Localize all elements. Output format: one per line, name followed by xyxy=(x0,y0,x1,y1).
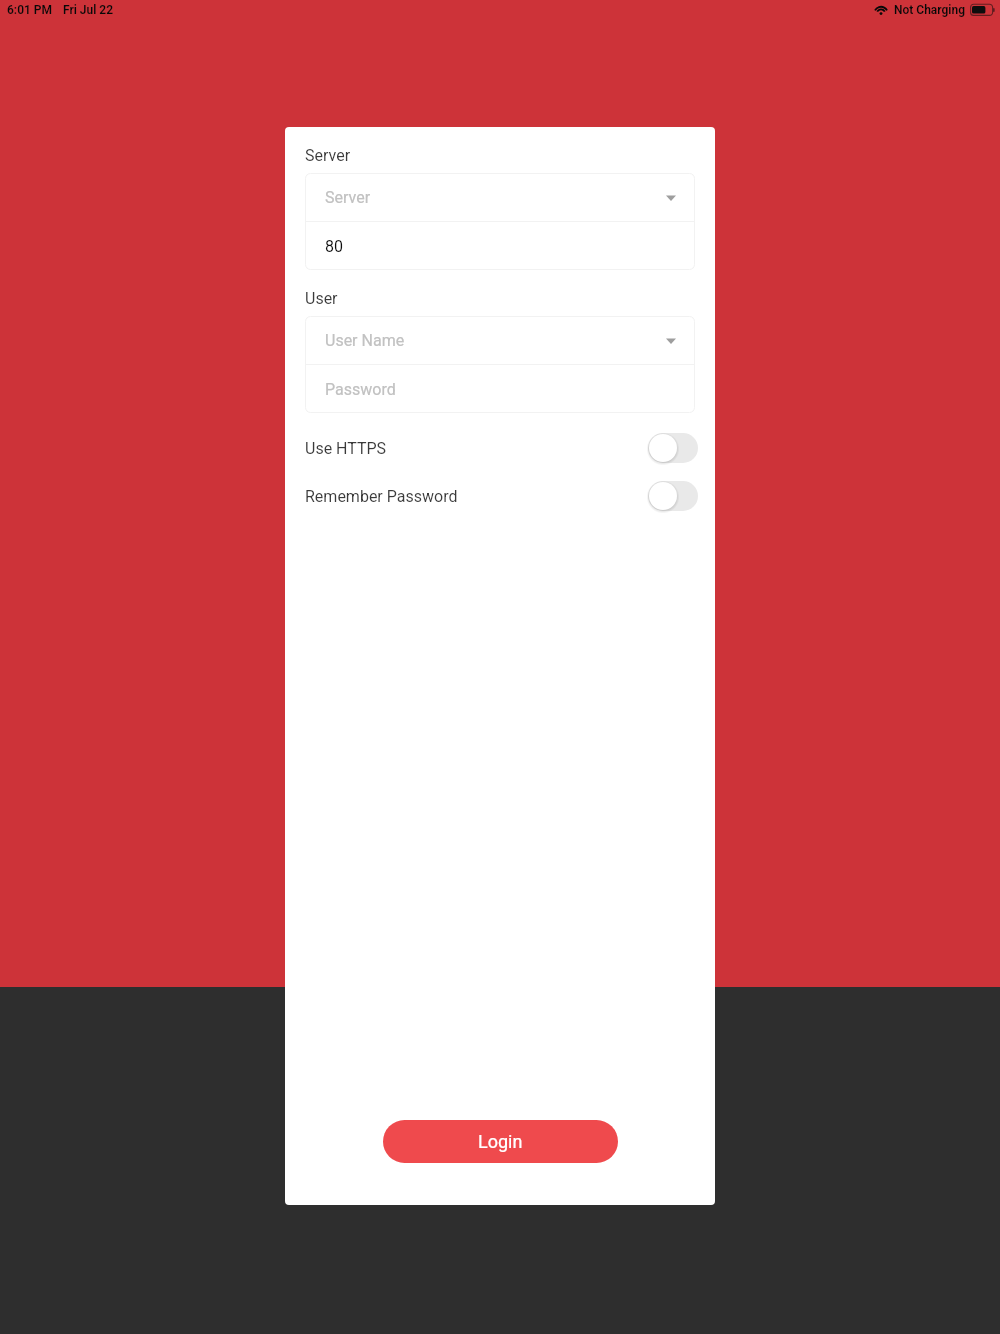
button[interactable]: Password xyxy=(305,365,695,413)
button[interactable]: Remember Password xyxy=(285,472,715,520)
staticText: Not Charging xyxy=(894,3,965,17)
staticText: 80 xyxy=(325,237,695,256)
button[interactable]: Login xyxy=(383,1120,618,1163)
button[interactable]: Use HTTPS, off xyxy=(648,433,698,463)
staticText: Fri Jul 22 xyxy=(63,3,114,17)
button[interactable]: User Name xyxy=(305,316,695,364)
staticText: Login xyxy=(478,1131,523,1152)
staticText: Server xyxy=(325,188,666,207)
button[interactable]: Server xyxy=(305,173,695,221)
staticText: 6:01 PM xyxy=(7,3,53,17)
button[interactable]: Use HTTPS xyxy=(285,424,715,472)
other: Show User Name options xyxy=(666,334,676,346)
staticText: User xyxy=(305,289,338,308)
button[interactable]: Remember Password, off xyxy=(648,481,698,511)
button[interactable]: 80 xyxy=(305,222,695,270)
staticText: Remember Password xyxy=(305,487,648,506)
other: Show Server options xyxy=(666,191,676,203)
other: Battery xyxy=(970,4,995,16)
staticText: Use HTTPS xyxy=(305,439,648,458)
staticText: User Name xyxy=(325,331,666,350)
staticText: Server xyxy=(305,146,351,165)
staticText: Password xyxy=(325,380,695,399)
other: Wi-Fi xyxy=(874,4,888,16)
